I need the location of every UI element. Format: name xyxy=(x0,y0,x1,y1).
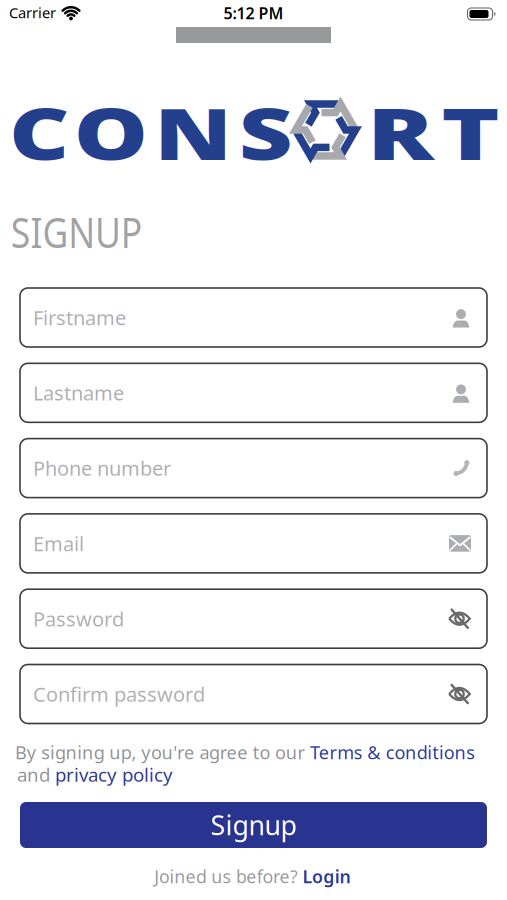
staticText: RT xyxy=(386,86,481,179)
staticText: Lastname xyxy=(33,379,124,406)
staticText: SIGNUP xyxy=(0,205,153,259)
staticText: Terms & conditions xyxy=(312,740,482,764)
button[interactable]: Login xyxy=(305,864,356,888)
staticText: Phone number xyxy=(33,455,171,481)
button[interactable]: Confirm password xyxy=(20,664,487,723)
button[interactable]: Password xyxy=(20,589,487,648)
staticText: Signup xyxy=(210,807,296,843)
staticText: Firstname xyxy=(33,304,126,331)
staticText: Password xyxy=(33,605,124,632)
button[interactable]: Lastname xyxy=(20,363,487,422)
button[interactable]: Phone number xyxy=(20,439,487,498)
button[interactable]: privacy policy xyxy=(55,762,173,787)
staticText: privacy policy xyxy=(55,762,173,787)
button[interactable]: Firstname xyxy=(20,288,487,347)
staticText: Login xyxy=(305,864,356,888)
staticText: Joined us before? xyxy=(149,864,305,888)
staticText: By signing up, you're agree to our xyxy=(8,740,312,764)
button[interactable]: Email xyxy=(20,514,487,573)
button[interactable]: Signup xyxy=(20,802,487,848)
button[interactable]: Terms & conditions xyxy=(312,740,482,764)
staticText: and xyxy=(17,762,55,787)
staticText: Confirm password xyxy=(33,681,205,707)
staticText: 5:12 PM xyxy=(223,2,283,24)
staticText: Email xyxy=(33,530,84,557)
staticText: CONS xyxy=(43,86,258,179)
staticText: Carrier xyxy=(9,3,56,22)
